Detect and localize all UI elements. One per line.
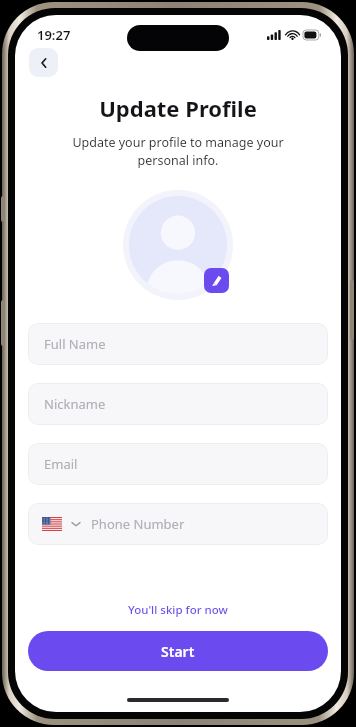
- button[interactable]: Full Name: [28, 323, 328, 365]
- staticText: Start: [161, 642, 195, 661]
- button[interactable]: Profile photo: [129, 196, 227, 294]
- staticText: Update your profile to manage your perso…: [45, 134, 311, 169]
- staticText: Email: [44, 455, 78, 473]
- button[interactable]: Nickname: [28, 383, 328, 425]
- button[interactable]: Edit photo: [204, 268, 229, 293]
- button[interactable]: Start: [28, 631, 328, 671]
- button[interactable]: Email: [28, 443, 328, 485]
- staticText: You'll skip for now: [128, 602, 228, 618]
- staticText: Full Name: [44, 335, 106, 353]
- staticText: Phone Number: [91, 515, 185, 533]
- button[interactable]: You'll skip for now: [120, 599, 236, 621]
- staticText: Update Profile: [15, 93, 341, 123]
- staticText: 19:27: [37, 26, 71, 44]
- button[interactable]: Phone Number: [28, 503, 328, 545]
- button[interactable]: Back: [29, 48, 58, 77]
- staticText: Nickname: [44, 395, 106, 413]
